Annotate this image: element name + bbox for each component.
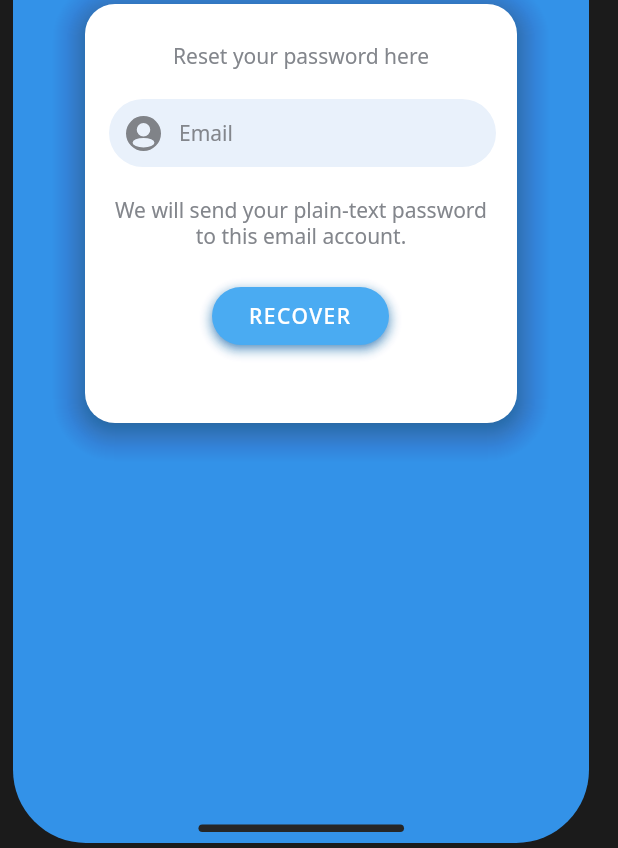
staticText: Email <box>179 119 233 148</box>
staticText: RECOVER <box>249 302 352 331</box>
staticText: Reset your password here <box>85 42 517 71</box>
staticText: We will send your plain-text password to… <box>85 196 517 250</box>
button[interactable]: RECOVER <box>212 287 389 345</box>
button[interactable]: Account <box>109 99 496 167</box>
other: Account <box>126 116 161 151</box>
